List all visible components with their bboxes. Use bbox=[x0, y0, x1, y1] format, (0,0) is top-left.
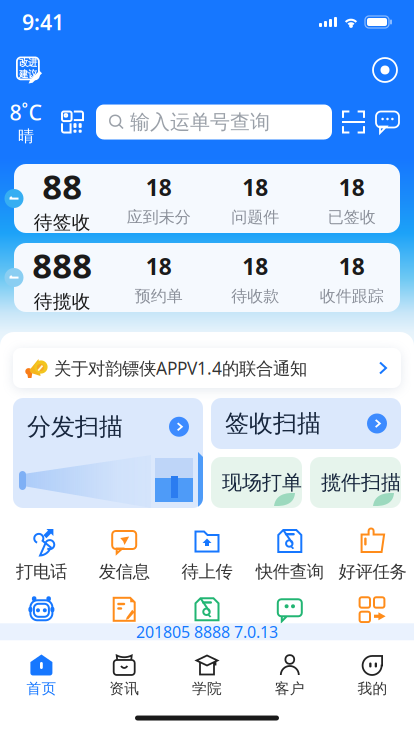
staticText: 首页 bbox=[26, 679, 56, 697]
button[interactable] bbox=[0, 596, 83, 622]
button[interactable] bbox=[248, 596, 331, 622]
staticText: 揽件扫描 bbox=[321, 470, 401, 495]
button[interactable]: 签收扫描 bbox=[211, 398, 401, 449]
staticText: 待上传 bbox=[181, 561, 232, 582]
staticText: 打电话 bbox=[16, 561, 67, 582]
button[interactable]: 首页 bbox=[0, 652, 83, 700]
button[interactable]: 快件查询 bbox=[248, 528, 331, 582]
staticText: 好评任务 bbox=[339, 561, 407, 582]
staticText: 改进 bbox=[19, 57, 37, 68]
staticText: 关于对韵镖侠APPV1.4的联合通知 bbox=[54, 356, 307, 379]
staticText: 应到未分 bbox=[127, 207, 191, 227]
staticText: 201805 8888 7.0.13 bbox=[136, 621, 278, 642]
button[interactable]: 888 bbox=[14, 242, 110, 313]
button[interactable]: 学院 bbox=[166, 652, 248, 700]
button[interactable]: 关于对韵镖侠APPV1.4的联合通知 bbox=[13, 348, 401, 388]
button[interactable]: 18 bbox=[110, 170, 207, 227]
button[interactable]: 输入运单号查询 bbox=[96, 104, 332, 139]
staticText: 我的 bbox=[358, 679, 388, 697]
button[interactable]: 扫描 bbox=[332, 110, 375, 133]
staticText: 资讯 bbox=[109, 679, 139, 697]
button[interactable]: 18 bbox=[303, 170, 400, 227]
button[interactable] bbox=[83, 596, 166, 622]
button[interactable]: 现场打单 bbox=[211, 457, 302, 508]
button[interactable] bbox=[331, 596, 414, 622]
staticText: 学院 bbox=[192, 679, 222, 697]
button[interactable]: 我的 bbox=[331, 652, 414, 700]
staticText: 预约单 bbox=[135, 286, 183, 306]
staticText: 88 bbox=[42, 163, 82, 209]
staticText: 快件查询 bbox=[256, 561, 324, 582]
staticText: 输入运单号查询 bbox=[130, 110, 270, 134]
button[interactable]: 88 bbox=[14, 163, 110, 234]
staticText: 签收扫描 bbox=[225, 409, 321, 438]
staticText: 待收款 bbox=[231, 286, 279, 306]
button[interactable]: 18 bbox=[303, 249, 400, 306]
button[interactable]: 客户 bbox=[248, 652, 331, 700]
staticText: 9:41 bbox=[22, 8, 64, 36]
button[interactable]: 好评任务 bbox=[331, 528, 414, 582]
button[interactable]: 8˚C bbox=[0, 101, 52, 143]
staticText: 收件跟踪 bbox=[320, 286, 384, 306]
button[interactable] bbox=[166, 596, 248, 622]
button[interactable]: 录音 bbox=[372, 57, 398, 83]
button[interactable]: 扫码 bbox=[52, 110, 93, 133]
staticText: 客户 bbox=[275, 679, 305, 697]
button[interactable]: 待上传 bbox=[166, 528, 248, 582]
button[interactable]: 消息 bbox=[375, 110, 400, 133]
staticText: 发信息 bbox=[99, 561, 150, 582]
button[interactable]: 18 bbox=[207, 170, 303, 227]
staticText: 待签收 bbox=[34, 211, 91, 234]
staticText: 18 bbox=[146, 251, 172, 281]
staticText: 建议 bbox=[19, 68, 37, 80]
staticText: 18 bbox=[242, 251, 268, 281]
staticText: 待揽收 bbox=[34, 290, 91, 313]
button[interactable]: 18 bbox=[207, 249, 303, 306]
button[interactable]: 分发扫描 bbox=[13, 398, 203, 508]
staticText: 晴 bbox=[18, 126, 34, 146]
staticText: 8˚C bbox=[9, 98, 42, 126]
staticText: 18 bbox=[146, 172, 172, 202]
button[interactable]: 发信息 bbox=[83, 528, 166, 582]
staticText: 已签收 bbox=[328, 207, 376, 227]
button[interactable]: 资讯 bbox=[83, 652, 166, 700]
staticText: 18 bbox=[242, 172, 268, 202]
button[interactable]: 改进建议 bbox=[16, 56, 43, 83]
staticText: 现场打单 bbox=[222, 470, 302, 495]
staticText: 18 bbox=[339, 172, 365, 202]
button[interactable]: 揽件扫描 bbox=[310, 457, 401, 508]
button[interactable]: 18 bbox=[110, 249, 207, 306]
staticText: 18 bbox=[339, 251, 365, 281]
staticText: 888 bbox=[32, 242, 92, 288]
staticText: 问题件 bbox=[231, 207, 279, 227]
button[interactable]: 打电话 bbox=[0, 528, 83, 582]
staticText: 分发扫描 bbox=[27, 412, 123, 441]
